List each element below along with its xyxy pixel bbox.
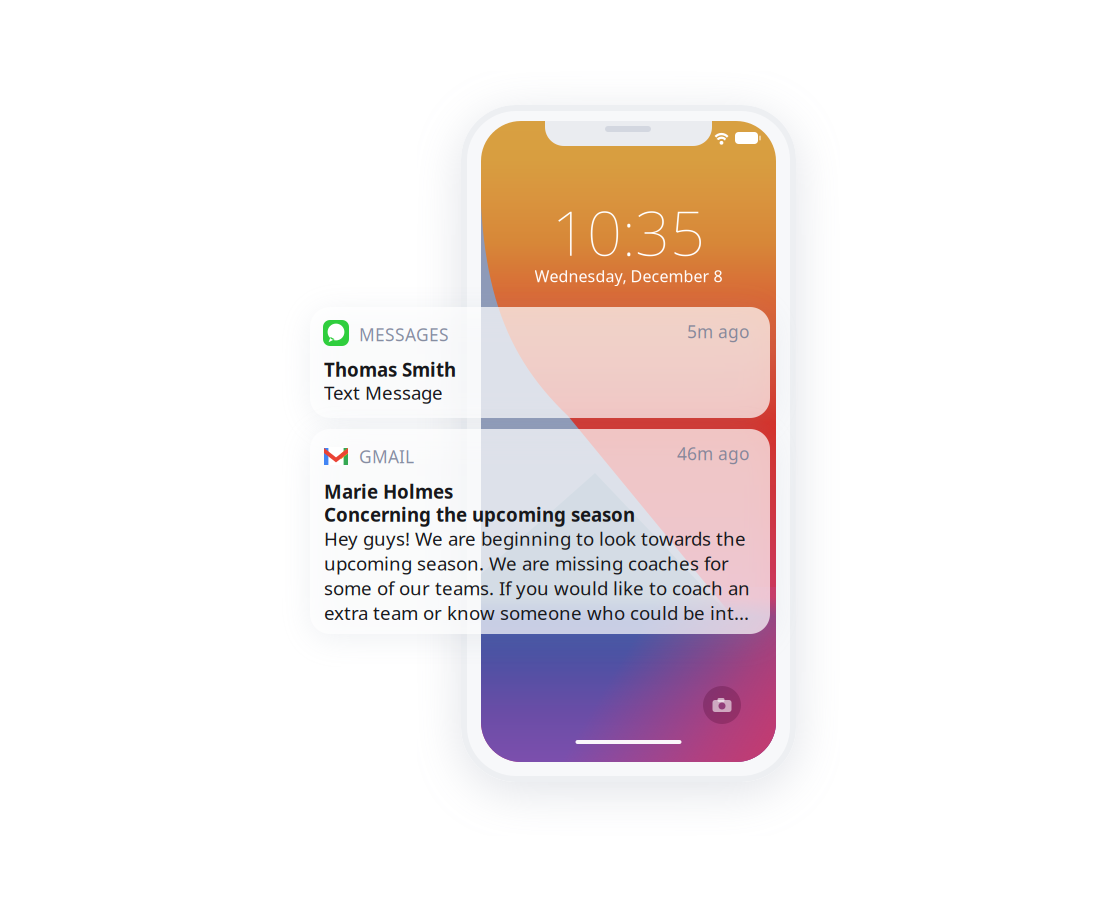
staticText: 46m ago <box>677 442 749 465</box>
staticText: Hey guys! We are beginning to look towar… <box>324 526 750 625</box>
staticText: GMAIL <box>359 445 414 468</box>
staticText: MESSAGES <box>359 323 449 346</box>
staticText: Marie Holmes <box>324 479 453 504</box>
staticText: Concerning the upcoming season <box>324 502 635 527</box>
button[interactable]: GMAIL <box>310 429 770 634</box>
staticText: 10:35 <box>552 191 705 273</box>
staticText: Text Message <box>324 380 443 405</box>
staticText: Thomas Smith <box>324 357 456 382</box>
staticText: 5m ago <box>687 320 749 343</box>
staticText: Wednesday, December 8 <box>534 265 722 287</box>
button[interactable]: Camera <box>703 686 741 724</box>
button[interactable]: MESSAGES <box>310 307 770 418</box>
